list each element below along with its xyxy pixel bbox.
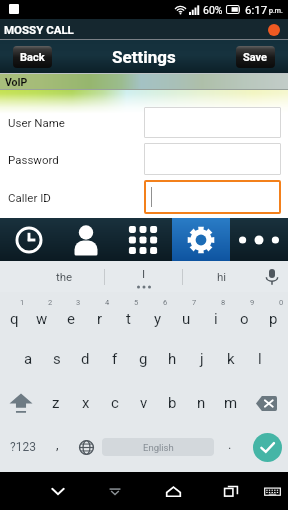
staticText: j <box>200 350 204 368</box>
staticText: 4 <box>105 298 110 307</box>
staticText: English <box>143 442 174 453</box>
button[interactable]: x <box>71 381 100 425</box>
staticText: 1 <box>20 298 25 307</box>
button[interactable]: c <box>100 381 129 425</box>
button[interactable]: Back <box>13 46 52 68</box>
staticText: c <box>111 394 119 412</box>
staticText: I <box>142 267 146 280</box>
button[interactable]: k <box>216 337 245 381</box>
staticText: g <box>139 350 148 368</box>
staticText: 6 <box>163 298 168 307</box>
button[interactable]: Keyboard <box>253 472 288 510</box>
button[interactable]: , <box>44 425 70 469</box>
button[interactable]: h <box>158 337 187 381</box>
staticText: Password <box>8 153 59 166</box>
button[interactable]: 7 <box>172 293 201 337</box>
button[interactable]: Recents <box>0 218 57 261</box>
staticText: i <box>214 310 218 328</box>
button[interactable]: ?123 <box>2 425 44 469</box>
staticText: f <box>112 350 118 368</box>
staticText: 6:17 <box>245 3 268 16</box>
staticText: w <box>36 310 48 328</box>
staticText: the <box>56 270 73 283</box>
button[interactable]: More <box>230 218 288 261</box>
button[interactable]: j <box>187 337 216 381</box>
staticText: y <box>154 310 162 328</box>
staticText: Back <box>20 51 45 64</box>
button[interactable]: Change language <box>72 425 100 469</box>
button[interactable]: Keypad <box>114 218 172 261</box>
button[interactable]: Contacts <box>57 218 114 261</box>
staticText: a <box>24 350 33 368</box>
button[interactable]: . <box>216 425 244 469</box>
staticText: 0 <box>279 298 284 307</box>
button[interactable]: the <box>24 261 104 292</box>
button[interactable] <box>144 143 281 175</box>
button[interactable]: 5 <box>114 293 143 337</box>
button[interactable]: s <box>42 337 71 381</box>
staticText: r <box>97 310 103 328</box>
staticText: x <box>82 394 90 412</box>
button[interactable]: I <box>105 261 182 292</box>
button[interactable]: Hide keyboard <box>39 472 77 510</box>
staticText: hi <box>217 270 227 283</box>
button[interactable]: Save <box>236 46 275 68</box>
staticText: 3 <box>76 298 81 307</box>
staticText: e <box>67 310 75 328</box>
staticText: z <box>52 394 60 412</box>
button[interactable]: v <box>129 381 158 425</box>
button[interactable]: 8 <box>201 293 230 337</box>
staticText: . <box>228 437 232 452</box>
staticText: Settings <box>112 47 176 67</box>
button[interactable]: Shift <box>0 381 41 425</box>
button[interactable]: Backspace <box>245 381 288 425</box>
button[interactable]: 4 <box>85 293 114 337</box>
staticText: b <box>168 394 177 412</box>
button[interactable]: l <box>245 337 274 381</box>
staticText: VoIP <box>5 76 28 88</box>
button[interactable]: 6 <box>143 293 172 337</box>
staticText: 5 <box>134 298 139 307</box>
button[interactable]: Voice input <box>256 261 288 292</box>
button[interactable]: a <box>14 337 42 381</box>
staticText: n <box>197 394 206 412</box>
staticText: Caller ID <box>8 191 51 204</box>
button[interactable]: Enter <box>246 425 288 469</box>
staticText: h <box>168 350 177 368</box>
staticText: s <box>53 350 61 368</box>
button[interactable]: m <box>216 381 245 425</box>
staticText: 8 <box>221 298 226 307</box>
staticText: Save <box>243 51 268 64</box>
staticText: MOSSY CALL <box>4 23 74 36</box>
button[interactable]: z <box>41 381 71 425</box>
button[interactable]: d <box>71 337 100 381</box>
button[interactable]: 0 <box>259 293 288 337</box>
button[interactable]: English <box>102 438 214 456</box>
staticText: User Name <box>8 116 65 129</box>
button[interactable]: n <box>187 381 216 425</box>
button[interactable]: 3 <box>56 293 85 337</box>
button[interactable]: 1 <box>0 293 28 337</box>
button[interactable]: g <box>129 337 158 381</box>
button[interactable]: f <box>100 337 129 381</box>
staticText: 7 <box>192 298 197 307</box>
staticText: v <box>140 394 148 412</box>
button[interactable]: Recent apps <box>212 472 250 510</box>
button[interactable]: Home <box>154 472 192 510</box>
button[interactable]: Back <box>96 472 134 510</box>
button[interactable]: b <box>158 381 187 425</box>
button[interactable]: hi <box>183 261 260 292</box>
staticText: p <box>269 310 278 328</box>
staticText: 9 <box>250 298 255 307</box>
button[interactable]: 2 <box>28 293 56 337</box>
staticText: k <box>227 350 235 368</box>
staticText: d <box>81 350 90 368</box>
staticText: 60% <box>203 4 223 16</box>
button[interactable] <box>144 107 281 138</box>
staticText: l <box>258 350 262 368</box>
staticText: t <box>126 310 131 328</box>
button[interactable] <box>144 180 281 214</box>
button[interactable]: Settings <box>172 218 230 261</box>
button[interactable]: 9 <box>230 293 259 337</box>
staticText: p.m. <box>269 7 283 15</box>
